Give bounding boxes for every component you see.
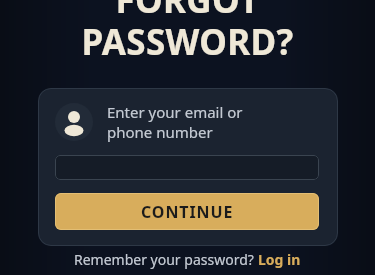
staticText: CONTINUE [141, 201, 234, 223]
staticText: Log in [258, 250, 301, 269]
staticText: Remember your password? [74, 250, 258, 269]
button[interactable]: Log in [258, 250, 301, 269]
staticText: FORGOT PASSWORD? [0, 0, 375, 65]
button[interactable]: Account avatar [55, 103, 93, 141]
button[interactable]: Email or phone number field [55, 155, 319, 180]
staticText: Enter your email or phone number [107, 102, 243, 142]
button[interactable]: CONTINUE [55, 193, 319, 230]
